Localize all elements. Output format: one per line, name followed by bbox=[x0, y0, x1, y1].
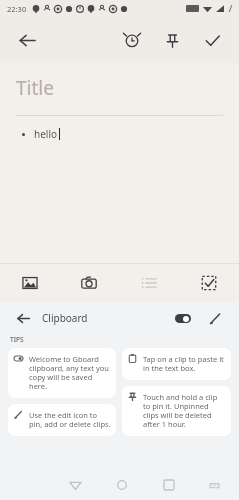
staticText: Clipboard bbox=[42, 311, 88, 325]
button[interactable]: Use the edit icon to pin, add or delete … bbox=[8, 404, 116, 436]
button[interactable]: Insert image bbox=[0, 264, 59, 302]
button[interactable]: Back bbox=[10, 305, 36, 331]
button[interactable]: Touch and hold a clip to pin it. Unpinne… bbox=[122, 386, 231, 436]
button[interactable]: Reminder bbox=[115, 23, 149, 57]
button[interactable]: Keyboard bbox=[201, 472, 227, 498]
button[interactable]: Back bbox=[60, 470, 90, 500]
button[interactable]: Recents bbox=[154, 470, 184, 500]
button[interactable]: Checklist bbox=[179, 264, 239, 302]
button[interactable]: Done bbox=[195, 23, 229, 57]
staticText: Touch and hold a clip to pin it. Unpinne… bbox=[143, 392, 226, 430]
staticText: Use the edit icon to pin, add or delete … bbox=[29, 410, 111, 430]
staticText: 22:30 bbox=[7, 4, 27, 14]
button[interactable]: Tap on a clip to paste it in the text bo… bbox=[122, 348, 231, 380]
staticText: hello bbox=[34, 127, 58, 141]
button[interactable]: Edit clips bbox=[201, 304, 229, 332]
button[interactable]: Welcome to Gboard clipboard, any text yo… bbox=[8, 348, 116, 398]
button[interactable]: Take photo bbox=[59, 264, 119, 302]
button[interactable]: Clipboard toggle bbox=[169, 304, 197, 332]
button[interactable]: Home bbox=[107, 470, 137, 500]
staticText: TIPS bbox=[10, 335, 24, 344]
staticText: Welcome to Gboard clipboard, any text yo… bbox=[29, 354, 111, 392]
button[interactable]: Back bbox=[10, 23, 44, 57]
button[interactable]: Bulleted list bbox=[119, 264, 179, 302]
button[interactable]: Pin bbox=[155, 23, 189, 57]
staticText: Tap on a clip to paste it in the text bo… bbox=[143, 354, 226, 374]
staticText: Title bbox=[16, 75, 54, 101]
